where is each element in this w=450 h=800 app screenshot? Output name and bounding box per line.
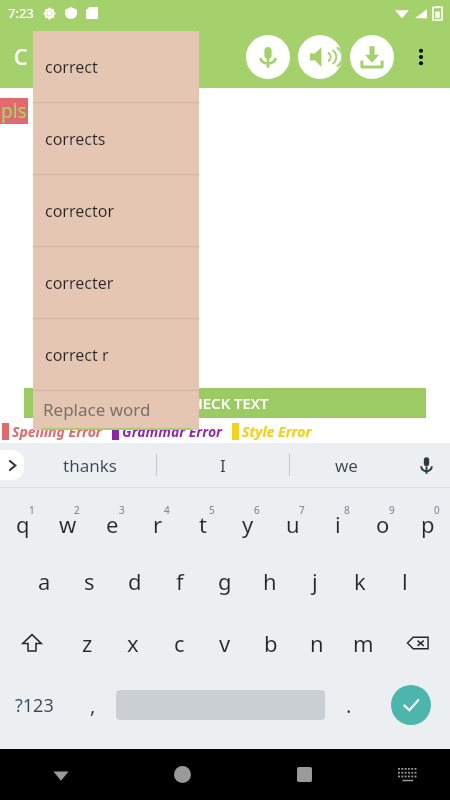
button[interactable]: Voice typing: [402, 443, 450, 487]
button[interactable]: Listen: [298, 35, 342, 79]
staticText: Grammar Error: [122, 422, 222, 441]
staticText: l: [402, 566, 408, 596]
button[interactable]: correct: [33, 31, 199, 102]
staticText: 9: [389, 503, 395, 517]
staticText: corrects: [45, 128, 106, 150]
button[interactable]: Shift: [0, 612, 64, 674]
button[interactable]: I: [157, 443, 289, 487]
button[interactable]: Recents: [243, 749, 365, 800]
staticText: i: [335, 509, 341, 539]
button[interactable]: we: [290, 443, 402, 487]
button[interactable]: corrects: [33, 103, 199, 174]
button[interactable]: j: [292, 550, 337, 612]
staticText: .: [346, 692, 352, 719]
staticText: r: [153, 509, 163, 539]
button[interactable]: thanks: [24, 443, 156, 487]
staticText: 6: [254, 503, 260, 517]
staticText: 7: [299, 503, 305, 517]
staticText: n: [310, 628, 324, 658]
button[interactable]: Save: [350, 35, 394, 79]
button[interactable]: correcter: [33, 247, 199, 318]
button[interactable]: a: [22, 550, 67, 612]
button[interactable]: l: [382, 550, 427, 612]
button[interactable]: 5: [180, 488, 225, 550]
staticText: g: [218, 566, 232, 596]
button[interactable]: 4: [135, 488, 180, 550]
staticText: 5: [209, 503, 215, 517]
staticText: correcter: [45, 272, 114, 294]
button[interactable]: Hide keyboard: [0, 749, 121, 800]
staticText: s: [84, 566, 95, 596]
button[interactable]: g: [202, 550, 247, 612]
button[interactable]: .: [325, 674, 372, 736]
button[interactable]: k: [337, 550, 382, 612]
staticText: c: [174, 628, 185, 658]
button[interactable]: 8: [315, 488, 360, 550]
staticText: ?123: [15, 693, 54, 718]
staticText: y: [242, 509, 254, 539]
staticText: we: [335, 454, 358, 477]
button[interactable]: Expand toolbar: [0, 450, 24, 480]
staticText: 1: [29, 503, 35, 517]
staticText: I: [220, 454, 226, 477]
button[interactable]: h: [247, 550, 292, 612]
button[interactable]: Switch keyboard: [365, 749, 450, 800]
staticText: corrector: [45, 200, 115, 222]
button[interactable]: corrector: [33, 175, 199, 246]
button[interactable]: ?123: [0, 674, 69, 736]
button[interactable]: 2: [45, 488, 90, 550]
button[interactable]: n: [294, 612, 340, 674]
staticText: pls: [1, 98, 27, 124]
button[interactable]: Voice input: [246, 35, 290, 79]
button[interactable]: 9: [360, 488, 405, 550]
staticText: Replace word: [43, 398, 151, 421]
button[interactable]: Done: [372, 674, 450, 736]
staticText: Spelling Error: [12, 422, 102, 441]
button[interactable]: 7: [270, 488, 315, 550]
staticText: v: [219, 628, 231, 658]
staticText: f: [176, 566, 184, 596]
button[interactable]: s: [67, 550, 112, 612]
button[interactable]: v: [202, 612, 248, 674]
staticText: thanks: [63, 454, 117, 477]
staticText: m: [353, 628, 374, 658]
button[interactable]: c: [156, 612, 202, 674]
staticText: CHECK TEXT: [182, 393, 269, 413]
button[interactable]: Home: [121, 749, 243, 800]
staticText: z: [82, 628, 93, 658]
button[interactable]: f: [157, 550, 202, 612]
staticText: p: [421, 509, 435, 539]
button[interactable]: d: [112, 550, 157, 612]
button[interactable]: b: [248, 612, 294, 674]
button[interactable]: Backspace: [386, 612, 450, 674]
staticText: 0: [434, 503, 440, 517]
staticText: correct: [45, 56, 98, 78]
button[interactable]: CHECK TEXT: [24, 388, 426, 418]
button[interactable]: 0: [405, 488, 450, 550]
staticText: t: [199, 509, 207, 539]
staticText: Style Error: [242, 422, 312, 441]
button[interactable]: 6: [225, 488, 270, 550]
staticText: h: [263, 566, 277, 596]
staticText: 4: [164, 503, 170, 517]
staticText: o: [376, 509, 390, 539]
button[interactable]: correct r: [33, 319, 199, 390]
staticText: x: [127, 628, 139, 658]
button[interactable]: ,: [69, 674, 116, 736]
staticText: 2: [74, 503, 80, 517]
button[interactable]: x: [110, 612, 156, 674]
button[interactable]: m: [340, 612, 386, 674]
staticText: d: [128, 566, 142, 596]
button[interactable]: z: [64, 612, 110, 674]
button[interactable]: Replace word: [33, 391, 199, 428]
button[interactable]: 3: [90, 488, 135, 550]
staticText: correct r: [45, 344, 109, 366]
staticText: q: [16, 509, 30, 539]
staticText: 3: [119, 503, 125, 517]
staticText: a: [38, 566, 51, 596]
staticText: 7:23: [8, 4, 34, 22]
button[interactable]: More options: [398, 34, 444, 80]
staticText: ar: [137, 98, 156, 124]
button[interactable]: 1: [0, 488, 45, 550]
